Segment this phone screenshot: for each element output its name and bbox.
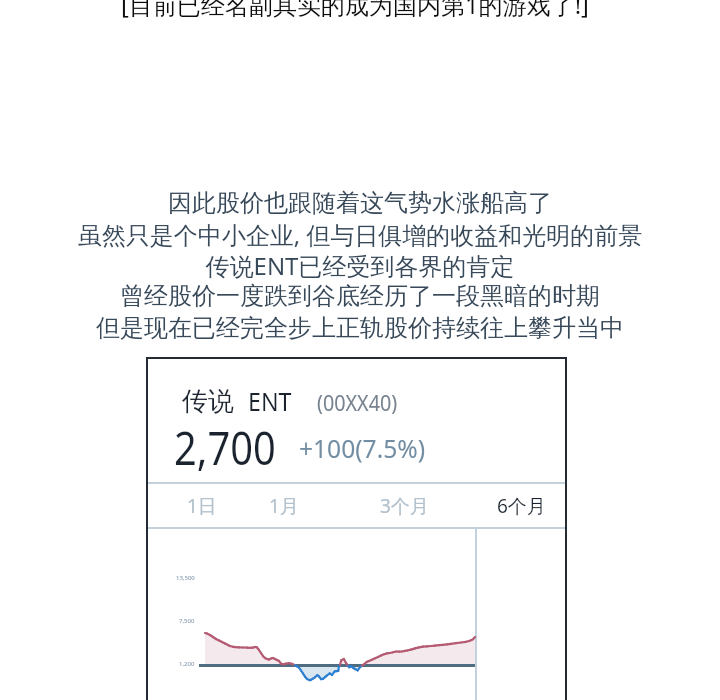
staticText: 7,500 [179, 617, 195, 625]
staticText: 1日 [187, 493, 217, 519]
staticText: 虽然只是个中小企业, 但与日俱增的收益和光明的前景 [0, 218, 720, 251]
staticText: 但是现在已经完全步上正轨股价持续往上攀升当中 [0, 313, 720, 343]
staticText: [目前已经名副其实的成为国内第1的游戏了!] [0, 0, 715, 21]
button[interactable]: 1月 [248, 484, 320, 527]
staticText: 3个月 [380, 493, 429, 519]
staticText: ENT [248, 384, 292, 418]
staticText: 曾经股价一度跌到谷底经历了一段黑暗的时期 [0, 281, 720, 311]
staticText: 6个月 [497, 493, 546, 519]
button[interactable]: 3个月 [368, 484, 440, 527]
staticText: +100(7.5%) [299, 430, 426, 465]
button[interactable]: 传说 ENT 股价卡片 [146, 357, 567, 700]
staticText: 传说ENT已经受到各界的肯定 [0, 249, 720, 282]
button[interactable]: 1日 [166, 484, 238, 527]
staticText: 因此股价也跟随着这气势水涨船高了 [0, 188, 720, 218]
staticText: 13,500 [176, 574, 195, 582]
staticText: (00XX40) [317, 389, 398, 418]
staticText: 传说 [182, 385, 234, 418]
staticText: 1,200 [179, 660, 195, 668]
staticText: 1月 [269, 493, 299, 519]
staticText: 2,700 [174, 417, 277, 478]
button[interactable]: 6个月 [485, 484, 557, 527]
